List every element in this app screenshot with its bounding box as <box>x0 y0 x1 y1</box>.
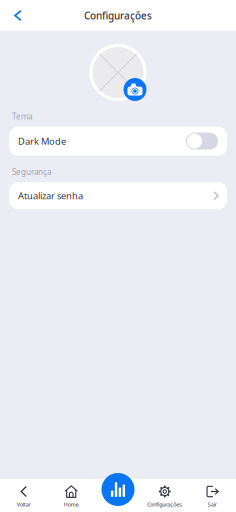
staticText: Tema <box>12 111 32 122</box>
staticText: Configurações <box>147 501 182 508</box>
staticText: Voltar <box>17 501 31 508</box>
button[interactable]: Statistics <box>101 473 134 506</box>
button[interactable]: Change photo <box>123 78 146 101</box>
staticText: Sair <box>208 501 217 508</box>
staticText: Atualizar senha <box>18 190 83 202</box>
button[interactable]: Sair <box>188 485 236 508</box>
staticText: Configurações <box>84 9 152 22</box>
staticText: Dark Mode <box>18 135 66 147</box>
button[interactable]: Back <box>0 4 32 27</box>
button[interactable]: Dark Mode <box>186 133 218 150</box>
staticText: Segurança <box>12 167 51 177</box>
staticText: Home <box>64 501 79 508</box>
button[interactable]: Configurações <box>141 485 188 508</box>
button[interactable]: Voltar <box>0 485 47 508</box>
button[interactable]: Home <box>47 485 95 508</box>
button[interactable]: Atualizar senha <box>9 182 227 209</box>
